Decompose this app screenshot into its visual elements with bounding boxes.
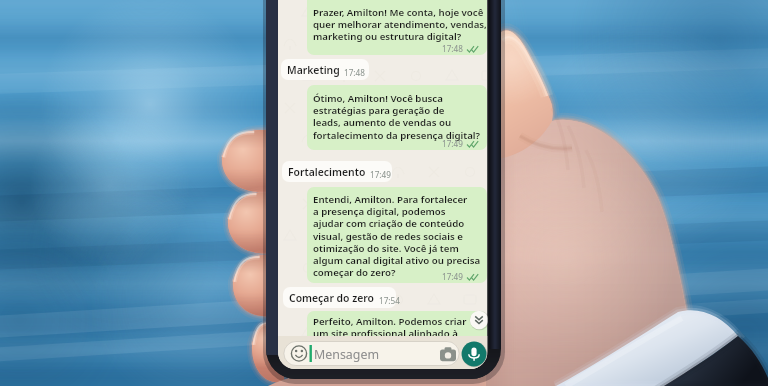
button[interactable]: [0, 0, 768, 386]
